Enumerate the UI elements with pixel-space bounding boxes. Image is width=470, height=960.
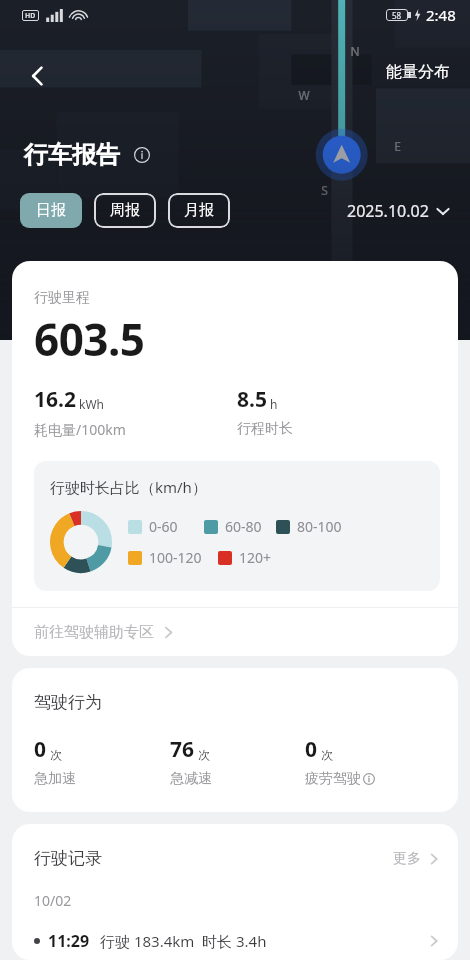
staticText: 11:29 [48,930,90,952]
staticText: 耗电量/100km [34,420,126,439]
staticText: 行车报告 [24,140,120,170]
staticText: 周报 [110,201,140,220]
staticText: 100-120 [149,548,202,567]
button[interactable]: 前往驾驶辅助专区 [12,608,458,656]
staticText: 前往驾驶辅助专区 [34,623,154,642]
staticText: 2:48 [426,5,456,25]
staticText: 行驶时长占比（km/h） [50,477,207,497]
staticText: E [394,138,401,154]
staticText: 能量分布 [386,62,450,82]
staticText: 120+ [239,548,272,567]
button[interactable]: 11:29 [34,930,440,952]
staticText: 60-80 [225,517,262,536]
button[interactable]: 能量分布 [382,58,454,86]
staticText: 16.2 [34,385,76,414]
staticText: 急加速 [34,770,76,788]
button[interactable]: 月报 [168,193,230,228]
staticText: 58 [392,10,402,21]
staticText: 行驶里程 [34,289,90,307]
staticText: HD [25,11,36,21]
staticText: 76 [170,735,195,764]
staticText: 疲劳驾驶 [305,770,361,788]
staticText: 8.5 [237,385,267,414]
staticText: kWh [79,396,104,412]
staticText: 驾驶行为 [34,692,102,713]
staticText: 0-60 [149,517,178,536]
staticText: 0 [305,735,318,764]
button[interactable]: Back [14,52,62,100]
staticText: 行驶 183.4km 时长 3.4h [100,931,267,951]
staticText: N [350,43,360,59]
staticText: 80-100 [297,517,342,536]
staticText: 603.5 [34,309,145,369]
staticText: 更多 [393,850,421,868]
button[interactable]: 日报 [20,193,82,228]
staticText: 月报 [184,201,214,220]
staticText: S [321,182,328,198]
staticText: 次 [198,747,210,762]
staticText: 次 [50,747,62,762]
staticText: 日报 [36,201,66,220]
staticText: 10/02 [34,891,72,910]
button[interactable]: 2025.10.02 [343,194,454,228]
staticText: W [298,87,310,103]
staticText: 次 [321,747,333,762]
button[interactable]: 行驶记录 [34,848,440,869]
staticText: 行驶记录 [34,848,102,869]
staticText: h [270,396,278,412]
button[interactable]: Info [129,142,155,168]
staticText: 2025.10.02 [347,200,429,222]
staticText: 0 [34,735,47,764]
button[interactable]: 周报 [94,193,156,228]
staticText: 行程时长 [237,420,293,438]
staticText: 急减速 [170,770,212,788]
